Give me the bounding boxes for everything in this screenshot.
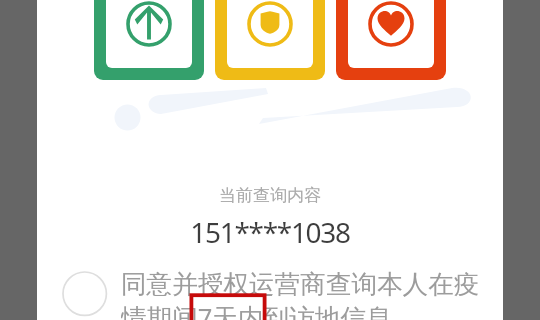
staticText: 同意并授权运营商查询本人在疫情期间7天内到访地信息 — [121, 268, 489, 320]
button[interactable]: Agree checkbox — [60, 268, 490, 320]
other: Agree checkbox — [60, 268, 490, 320]
staticText: 当前查询内容 — [37, 185, 503, 206]
button[interactable]: Green health code — [94, 0, 204, 80]
button[interactable]: Yellow health code — [215, 0, 325, 80]
button[interactable]: Red health code — [336, 0, 446, 80]
staticText: 151****1038 — [37, 213, 503, 251]
